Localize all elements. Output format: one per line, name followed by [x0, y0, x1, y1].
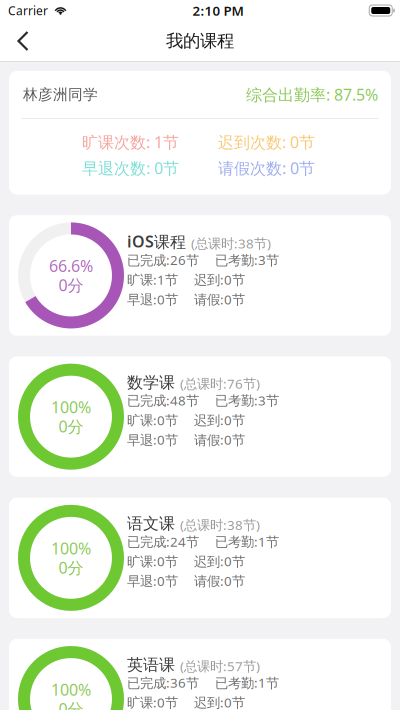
staticText: 请假次数: 0节: [218, 157, 315, 179]
staticText: 已考勤:3节: [215, 251, 279, 269]
staticText: 早退:0节: [127, 290, 178, 308]
staticText: 0分: [58, 557, 83, 578]
button[interactable]: 100%: [9, 639, 391, 710]
staticText: 100%: [51, 538, 91, 559]
staticText: 语文课: [127, 514, 175, 534]
button[interactable]: Back: [16, 21, 43, 60]
staticText: 早退:0节: [127, 572, 178, 590]
staticText: 0分: [58, 274, 83, 296]
staticText: 已考勤:1节: [215, 674, 279, 691]
staticText: 请假:0节: [194, 290, 245, 308]
button[interactable]: 66.6%: [9, 215, 391, 336]
staticText: 旷课:1节: [127, 271, 178, 288]
staticText: 综合出勤率: 87.5%: [246, 84, 378, 105]
staticText: 2:10 PM: [192, 2, 243, 19]
staticText: 我的课程: [166, 30, 234, 52]
staticText: (总课时:57节): [180, 657, 260, 675]
staticText: 请假:0节: [194, 572, 245, 590]
staticText: (总课时:38节): [191, 234, 271, 252]
button[interactable]: 100%: [9, 356, 391, 477]
staticText: iOS课程: [127, 231, 186, 252]
staticText: 迟到:0节: [194, 552, 245, 570]
staticText: 已完成:26节: [127, 251, 199, 269]
staticText: 已考勤:3节: [215, 391, 279, 409]
button[interactable]: 100%: [9, 498, 391, 618]
staticText: 迟到:0节: [194, 271, 245, 288]
staticText: 0分: [58, 698, 83, 710]
staticText: 林彦洲同学: [23, 85, 98, 103]
staticText: 已完成:24节: [127, 533, 199, 550]
staticText: 早退:0节: [127, 431, 178, 448]
staticText: 旷课:0节: [127, 552, 178, 570]
staticText: (总课时:38节): [180, 516, 260, 534]
staticText: 迟到:0节: [194, 411, 245, 429]
staticText: 100%: [51, 679, 91, 700]
staticText: (总课时:76节): [180, 375, 260, 392]
staticText: 旷课:0节: [127, 411, 178, 429]
staticText: 旷课次数: 1节: [82, 131, 179, 153]
staticText: 旷课:0节: [127, 693, 178, 710]
staticText: 0分: [58, 416, 83, 437]
staticText: 100%: [51, 396, 91, 418]
staticText: 迟到次数: 0节: [218, 131, 315, 153]
staticText: 早退次数: 0节: [82, 157, 179, 179]
staticText: 请假:0节: [194, 431, 245, 448]
staticText: 66.6%: [49, 255, 93, 276]
staticText: Carrier: [8, 2, 48, 18]
staticText: 已考勤:1节: [215, 533, 279, 550]
staticText: 迟到:0节: [194, 693, 245, 710]
staticText: 数学课: [127, 373, 175, 392]
staticText: 英语课: [127, 655, 175, 675]
staticText: 已完成:36节: [127, 674, 199, 691]
staticText: 已完成:48节: [127, 391, 199, 409]
